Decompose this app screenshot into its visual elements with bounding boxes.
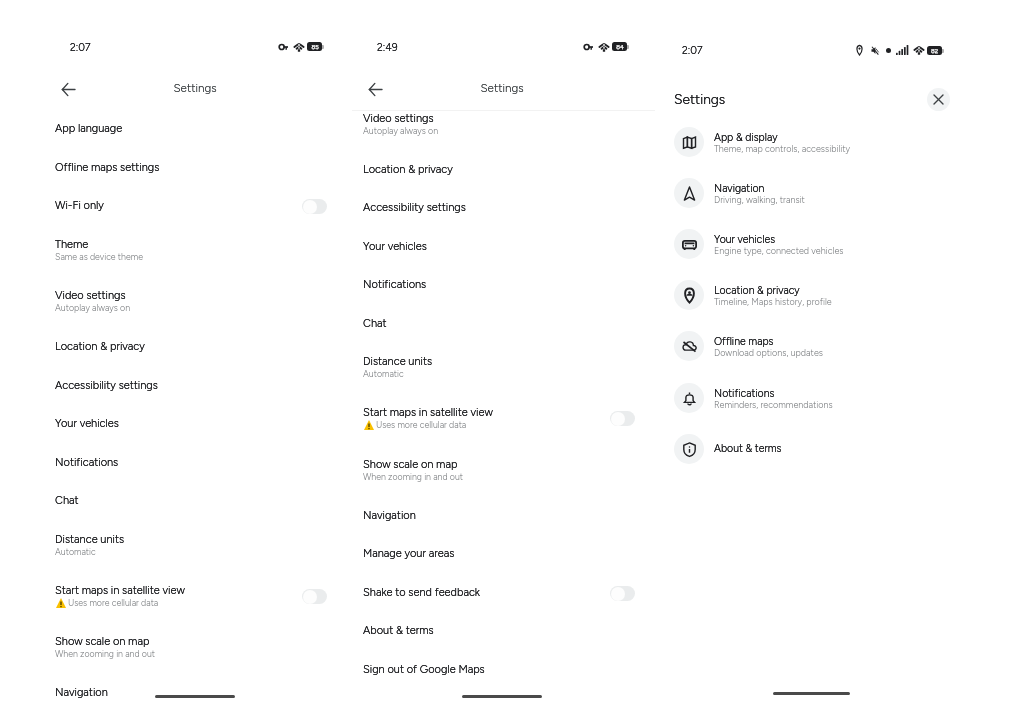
button[interactable]: Notifications xyxy=(352,273,655,303)
staticText: Show scale on map xyxy=(55,635,150,648)
button[interactable]: Start maps in satellite view xyxy=(0,579,352,621)
staticText: App language xyxy=(55,122,123,135)
staticText: Navigation xyxy=(55,686,108,699)
button[interactable]: Start maps in satellite view, off xyxy=(610,411,635,426)
button[interactable]: Back xyxy=(56,77,80,101)
staticText: Navigation xyxy=(714,182,765,195)
button[interactable]: App language xyxy=(0,117,352,147)
button[interactable]: Navigation xyxy=(655,174,1024,212)
button[interactable]: Manage your areas xyxy=(352,542,655,572)
staticText: Location & privacy xyxy=(55,340,145,353)
staticText: Distance units xyxy=(363,355,433,368)
staticText: Settings xyxy=(135,81,255,95)
staticText: Sign out of Google Maps xyxy=(363,663,485,676)
staticText: Location & privacy xyxy=(55,340,145,353)
staticText: Notifications xyxy=(714,387,775,400)
button[interactable]: Video settings xyxy=(0,284,352,326)
staticText: Same as device theme xyxy=(55,252,143,263)
staticText: Video settings xyxy=(363,112,434,125)
staticText: Video settings xyxy=(363,112,434,125)
staticText: 2:07 xyxy=(70,41,91,54)
staticText: About & terms xyxy=(363,624,434,637)
button[interactable]: Notifications xyxy=(0,451,352,481)
button[interactable]: Accessibility settings xyxy=(352,196,655,226)
button[interactable]: Accessibility settings xyxy=(0,374,352,404)
button[interactable]: Start maps in satellite view xyxy=(352,401,655,443)
button[interactable]: Back xyxy=(363,77,387,101)
button[interactable]: Notifications xyxy=(655,379,1024,417)
button[interactable]: About & terms xyxy=(655,430,1024,468)
button[interactable]: Video settings xyxy=(352,107,655,149)
button[interactable]: Wi-Fi only xyxy=(0,194,352,224)
staticText: Navigation xyxy=(55,686,108,699)
staticText: Theme xyxy=(55,238,89,251)
button[interactable]: Offline maps xyxy=(655,327,1024,365)
staticText: Video settings xyxy=(55,289,126,302)
staticText: Offline maps xyxy=(714,335,774,348)
button[interactable]: About & terms xyxy=(352,619,655,649)
button[interactable]: Wi-Fi only, off xyxy=(302,199,327,214)
staticText: 85 xyxy=(311,43,319,50)
staticText: Shake to send feedback xyxy=(363,586,480,599)
button[interactable]: Distance units xyxy=(352,350,655,392)
button[interactable]: Your vehicles xyxy=(0,412,352,442)
button[interactable]: Offline maps settings xyxy=(0,156,352,186)
staticText: Offline maps settings xyxy=(55,161,160,174)
staticText: Offline maps settings xyxy=(55,161,160,174)
button[interactable]: Shake to send feedback xyxy=(352,581,655,611)
staticText: Shake to send feedback xyxy=(363,586,480,599)
button[interactable]: Chat xyxy=(352,312,655,342)
staticText: App & display xyxy=(714,131,778,144)
staticText: Chat xyxy=(55,494,79,507)
staticText: 82 xyxy=(931,47,938,54)
staticText: Start maps in satellite view xyxy=(363,406,493,419)
button[interactable]: Distance units xyxy=(0,528,352,570)
staticText: Settings xyxy=(674,91,726,108)
staticText: Start maps in satellite view xyxy=(55,584,185,597)
button[interactable]: Location & privacy xyxy=(0,335,352,365)
staticText: Autoplay always on xyxy=(55,303,131,314)
staticText: App language xyxy=(55,122,123,135)
staticText: Distance units xyxy=(363,355,433,368)
staticText: Notifications xyxy=(714,387,775,400)
button[interactable]: Start maps in satellite view, off xyxy=(302,589,327,604)
staticText: 2:07 xyxy=(682,44,703,57)
staticText: Manage your areas xyxy=(363,547,455,560)
staticText: Offline maps xyxy=(714,335,774,348)
button[interactable]: Theme xyxy=(0,233,352,275)
staticText: Video settings xyxy=(55,289,126,302)
staticText: Accessibility settings xyxy=(55,379,158,392)
button[interactable]: Navigation xyxy=(352,504,655,534)
button[interactable]: Navigation xyxy=(0,681,352,711)
button[interactable]: Location & privacy xyxy=(655,276,1024,314)
button[interactable]: Sign out of Google Maps xyxy=(352,658,655,688)
staticText: Notifications xyxy=(55,456,119,469)
staticText: Accessibility settings xyxy=(55,379,158,392)
button[interactable]: Location & privacy xyxy=(352,158,655,188)
staticText: Shake to send feedback xyxy=(363,586,480,599)
button[interactable]: Your vehicles xyxy=(352,235,655,265)
staticText: Accessibility settings xyxy=(363,201,466,214)
staticText: App & display xyxy=(714,131,778,144)
staticText: Video settings xyxy=(363,112,434,125)
staticText: Automatic xyxy=(363,369,404,380)
staticText: Navigation xyxy=(363,509,416,522)
staticText: Location & privacy xyxy=(55,340,145,353)
staticText: Your vehicles xyxy=(55,417,119,430)
staticText: Accessibility settings xyxy=(363,201,466,214)
button[interactable]: Shake to send feedback, off xyxy=(610,586,635,601)
button[interactable]: Chat xyxy=(0,489,352,519)
button[interactable]: Show scale on map xyxy=(352,453,655,495)
staticText: Chat xyxy=(363,317,387,330)
staticText: Theme xyxy=(55,238,89,251)
staticText: Theme xyxy=(55,238,89,251)
staticText: Offline maps settings xyxy=(55,161,160,174)
button[interactable]: Show scale on map xyxy=(0,630,352,672)
staticText: Location & privacy xyxy=(363,163,453,176)
button[interactable]: Your vehicles xyxy=(655,225,1024,263)
button[interactable]: App & display xyxy=(655,123,1024,161)
staticText: Notifications xyxy=(363,278,427,291)
staticText: Navigation xyxy=(363,509,416,522)
button[interactable]: Close xyxy=(927,88,950,111)
staticText: Navigation xyxy=(714,182,765,195)
